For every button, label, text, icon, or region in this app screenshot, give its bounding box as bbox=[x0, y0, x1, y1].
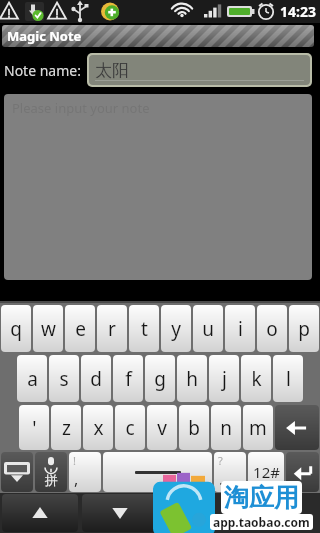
button[interactable]: q bbox=[1, 305, 31, 352]
staticText: a bbox=[27, 366, 38, 392]
button[interactable]: f bbox=[113, 355, 143, 402]
staticText: o bbox=[266, 316, 278, 342]
button[interactable]: Backspace bbox=[275, 405, 319, 450]
button[interactable]: Scroll up bbox=[2, 494, 78, 532]
staticText: y bbox=[171, 316, 181, 342]
staticText: z bbox=[62, 415, 71, 441]
button[interactable]: x bbox=[83, 405, 113, 450]
staticText: f bbox=[125, 366, 132, 392]
button[interactable]: c bbox=[115, 405, 145, 450]
button[interactable]: o bbox=[257, 305, 287, 352]
staticText: l bbox=[286, 366, 291, 392]
staticText: Note name: bbox=[4, 61, 81, 80]
staticText: p bbox=[298, 316, 310, 342]
button[interactable]: r bbox=[97, 305, 127, 352]
staticText: ! bbox=[73, 453, 76, 468]
button[interactable]: t bbox=[129, 305, 159, 352]
button[interactable]: ! bbox=[69, 452, 101, 492]
staticText: q bbox=[10, 316, 22, 342]
staticText: e bbox=[75, 316, 86, 342]
button[interactable]: y bbox=[161, 305, 191, 352]
staticText: n bbox=[220, 415, 232, 441]
staticText: i bbox=[238, 316, 243, 342]
button[interactable]: p bbox=[289, 305, 319, 352]
button[interactable]: b bbox=[179, 405, 209, 450]
staticText: k bbox=[251, 366, 262, 392]
button[interactable]: h bbox=[177, 355, 207, 402]
button[interactable]: Hide keyboard bbox=[1, 452, 33, 492]
staticText: Please input your note bbox=[12, 99, 150, 117]
staticText: ' bbox=[32, 415, 37, 441]
button[interactable]: k bbox=[241, 355, 271, 402]
staticText: h bbox=[186, 366, 198, 392]
staticText: 太阳 bbox=[95, 60, 129, 81]
button[interactable]: z bbox=[51, 405, 81, 450]
staticText: Magic Note bbox=[7, 27, 82, 45]
staticText: 14:23 bbox=[280, 2, 316, 21]
button[interactable]: v bbox=[147, 405, 177, 450]
button[interactable]: ' bbox=[19, 405, 49, 450]
staticText: 淘应用 bbox=[224, 482, 299, 513]
button[interactable]: Space bbox=[103, 452, 212, 492]
staticText: c bbox=[125, 415, 135, 441]
staticText: t bbox=[141, 316, 148, 342]
staticText: . bbox=[219, 468, 224, 490]
button[interactable]: m bbox=[243, 405, 273, 450]
button[interactable]: e bbox=[65, 305, 95, 352]
button[interactable]: Voice input, Pinyin bbox=[35, 452, 67, 492]
button[interactable]: Taobao app advertisement bbox=[145, 478, 320, 533]
staticText: 拼 bbox=[45, 472, 58, 488]
staticText: ? bbox=[218, 453, 223, 468]
staticText: j bbox=[222, 366, 227, 392]
button[interactable]: j bbox=[209, 355, 239, 402]
staticText: , bbox=[74, 468, 79, 490]
button[interactable]: ? bbox=[214, 452, 246, 492]
button[interactable]: s bbox=[49, 355, 79, 402]
staticText: b bbox=[188, 415, 200, 441]
button[interactable]: l bbox=[273, 355, 303, 402]
staticText: r bbox=[108, 316, 116, 342]
staticText: x bbox=[93, 415, 104, 441]
staticText: app.taobao.com bbox=[213, 514, 310, 530]
staticText: 12# bbox=[253, 462, 280, 482]
button[interactable]: g bbox=[145, 355, 175, 402]
staticText: g bbox=[154, 366, 166, 392]
button[interactable]: a bbox=[17, 355, 47, 402]
staticText: s bbox=[59, 366, 69, 392]
staticText: w bbox=[41, 316, 56, 342]
staticText: d bbox=[90, 366, 102, 392]
button[interactable]: w bbox=[33, 305, 63, 352]
button[interactable]: Enter bbox=[286, 452, 319, 492]
button[interactable]: n bbox=[211, 405, 241, 450]
button[interactable]: u bbox=[193, 305, 223, 352]
button[interactable]: 12# bbox=[248, 452, 284, 492]
staticText: v bbox=[157, 415, 167, 441]
button[interactable]: Scroll down bbox=[82, 494, 158, 532]
button[interactable]: 太阳 bbox=[89, 55, 310, 85]
staticText: m bbox=[249, 415, 267, 441]
button[interactable]: i bbox=[225, 305, 255, 352]
button[interactable]: d bbox=[81, 355, 111, 402]
staticText: u bbox=[202, 316, 214, 342]
